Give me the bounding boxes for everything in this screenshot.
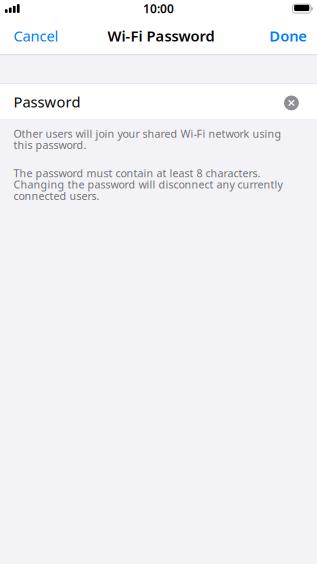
staticText: Done — [269, 26, 307, 45]
button[interactable]: Done — [259, 17, 317, 54]
button[interactable]: Password — [0, 84, 278, 119]
staticText: 10:00 — [143, 0, 174, 16]
staticText: connected users. — [13, 189, 99, 203]
staticText: Wi-Fi Password — [107, 26, 214, 45]
staticText: Changing the password will disconnect an… — [13, 177, 282, 192]
button[interactable]: Cancel — [0, 17, 68, 54]
staticText: Cancel — [13, 26, 58, 45]
staticText: Other users will join your shared Wi-Fi … — [13, 126, 281, 141]
button[interactable]: Clear text — [278, 84, 317, 119]
staticText: this password. — [13, 138, 86, 152]
staticText: The password must contain at least 8 cha… — [13, 166, 260, 180]
staticText: Password — [13, 92, 80, 111]
